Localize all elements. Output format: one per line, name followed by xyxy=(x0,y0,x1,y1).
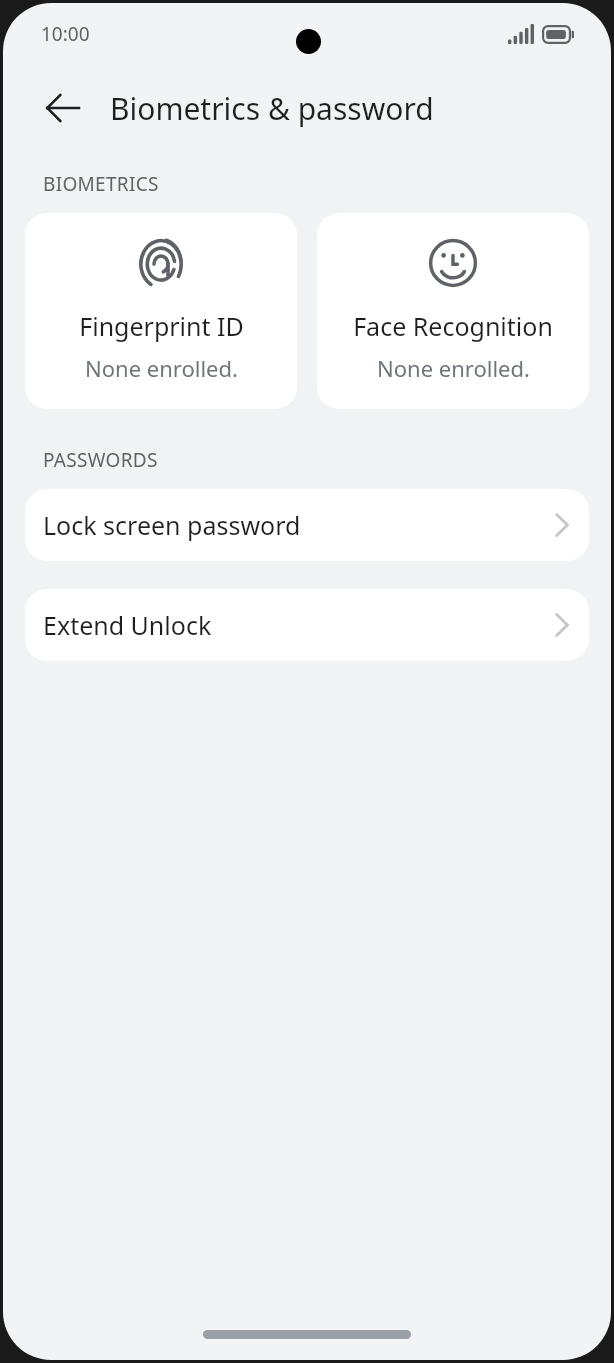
staticText: PASSWORDS xyxy=(43,447,158,473)
staticText: None enrolled. xyxy=(85,353,238,383)
staticText: Lock screen password xyxy=(43,508,301,542)
staticText: Biometrics & password xyxy=(110,88,434,129)
staticText: Face Recognition xyxy=(353,309,553,343)
staticText: None enrolled. xyxy=(377,353,530,383)
button[interactable]: Back xyxy=(29,74,97,142)
button[interactable]: Face Recognition xyxy=(317,213,589,409)
staticText: BIOMETRICS xyxy=(43,171,159,197)
button[interactable]: Lock screen password xyxy=(25,489,589,561)
button[interactable]: Fingerprint ID xyxy=(25,213,297,409)
staticText: Fingerprint ID xyxy=(79,309,244,343)
button[interactable]: Extend Unlock xyxy=(25,589,589,661)
staticText: Extend Unlock xyxy=(43,608,212,642)
staticText: 10:00 xyxy=(41,21,90,47)
